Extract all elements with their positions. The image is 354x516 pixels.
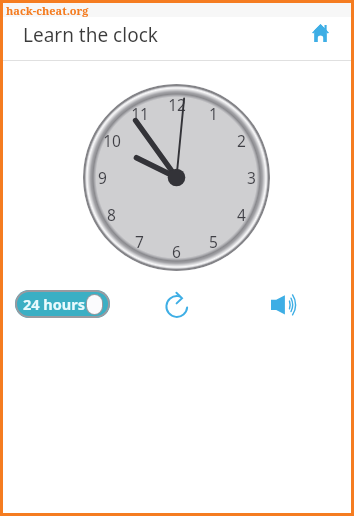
staticText: 11 [131, 103, 149, 124]
staticText: 24 hours [23, 294, 86, 314]
button[interactable]: Reset [155, 283, 198, 326]
staticText: 5 [209, 231, 218, 252]
staticText: 6 [172, 241, 181, 262]
staticText: Learn the clock [23, 22, 300, 48]
staticText: 1 [209, 103, 218, 124]
staticText: hack-cheat.org [6, 3, 89, 17]
staticText: 7 [135, 231, 144, 252]
staticText: 8 [107, 204, 116, 225]
staticText: 10 [103, 130, 121, 151]
staticText: 3 [247, 167, 256, 188]
button[interactable]: Sound [262, 283, 305, 326]
staticText: 9 [98, 167, 107, 188]
staticText: 4 [237, 204, 246, 225]
button[interactable]: 24 hours [15, 290, 110, 318]
staticText: 12 [168, 94, 186, 115]
button[interactable]: Home [300, 13, 340, 53]
staticText: 2 [237, 130, 246, 151]
